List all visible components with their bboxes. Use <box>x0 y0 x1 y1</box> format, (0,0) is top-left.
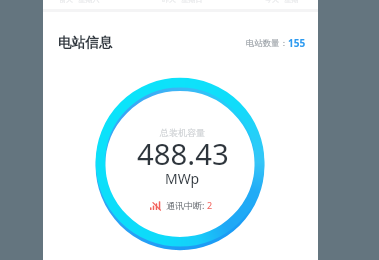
button[interactable]: 前天 · 星期六 <box>43 0 318 13</box>
staticText: 2 <box>207 199 213 211</box>
staticText: 前天 · 星期六 <box>59 0 100 5</box>
staticText: 488.43 <box>137 134 229 174</box>
other: Communication interrupted <box>150 201 161 210</box>
button[interactable]: 电站数量： <box>246 36 306 50</box>
staticText: 155 <box>288 36 306 50</box>
staticText: 今天 · 星期一 <box>265 0 306 5</box>
staticText: MWp <box>165 169 200 188</box>
staticText: 通讯中断: <box>166 199 205 211</box>
button[interactable]: Communication interrupted <box>150 199 213 211</box>
staticText: 昨天 · 星期日 <box>162 0 203 5</box>
staticText: 电站信息 <box>58 34 113 51</box>
staticText: 总装机容量 <box>160 127 205 138</box>
staticText: 电站数量： <box>246 38 288 49</box>
